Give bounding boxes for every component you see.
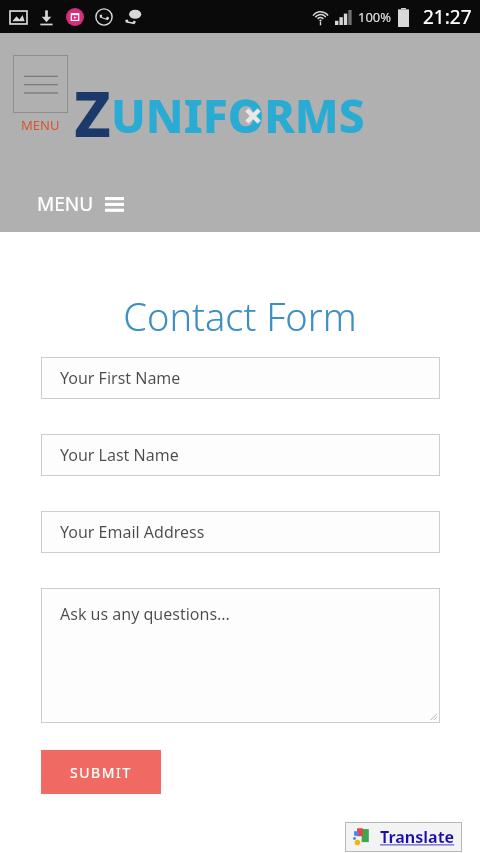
button[interactable]: Your First Name bbox=[41, 357, 440, 399]
staticText: 21:27 bbox=[423, 4, 472, 30]
staticText: Ask us any questions... bbox=[60, 603, 230, 625]
staticText: Z bbox=[74, 71, 111, 155]
button[interactable]: Open menu bbox=[13, 55, 68, 134]
button[interactable]: Your Last Name bbox=[41, 434, 440, 476]
button[interactable]: Your Email Address bbox=[41, 511, 440, 553]
staticText: UNIFORMS bbox=[111, 84, 365, 147]
button[interactable]: Translate bbox=[345, 822, 462, 852]
staticText: 100% bbox=[358, 8, 392, 26]
staticText: Your Email Address bbox=[60, 521, 205, 543]
staticText: Your First Name bbox=[60, 367, 181, 389]
staticText: MENU bbox=[37, 191, 94, 217]
staticText: Contact Form bbox=[0, 290, 480, 342]
button[interactable]: Ask us any questions... bbox=[41, 588, 440, 723]
staticText: Your Last Name bbox=[60, 444, 179, 466]
button[interactable]: MENU bbox=[0, 181, 480, 227]
button[interactable]: SUBMIT bbox=[41, 750, 161, 794]
staticText: SUBMIT bbox=[70, 763, 132, 782]
staticText: MENU bbox=[21, 116, 60, 134]
staticText: Translate bbox=[380, 826, 455, 848]
